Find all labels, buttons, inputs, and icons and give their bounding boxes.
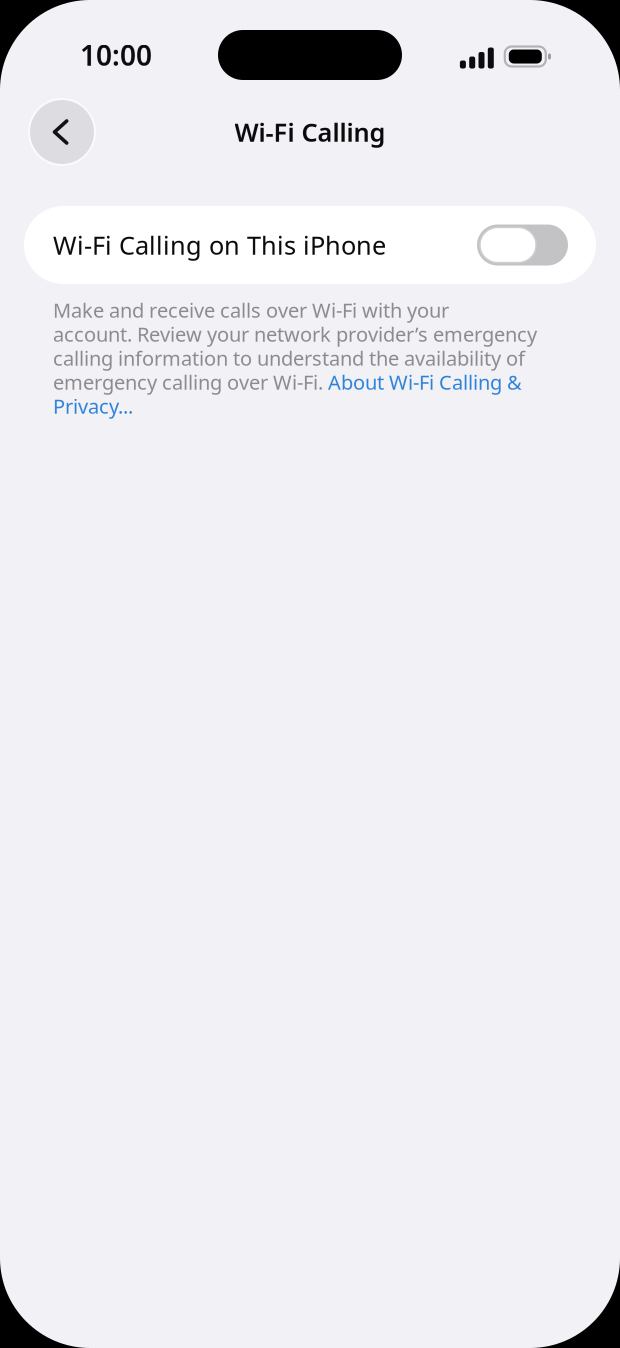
staticText: 10:00: [80, 36, 152, 74]
button[interactable]: Back: [28, 98, 96, 166]
button[interactable]: emergency calling over Wi-Fi. About Wi-F…: [53, 370, 580, 418]
staticText: Privacy...: [53, 392, 133, 420]
staticText: account. Review your network provider’s …: [53, 320, 537, 348]
staticText: Wi-Fi Calling: [234, 115, 385, 149]
staticText: calling information to understand the av…: [53, 344, 525, 372]
staticText: Make and receive calls over Wi-Fi with y…: [53, 296, 449, 324]
staticText: emergency calling over Wi-Fi. About Wi-F…: [53, 368, 522, 396]
button[interactable]: Wi-Fi Calling on This iPhone: [24, 206, 596, 284]
staticText: Wi-Fi Calling on This iPhone: [53, 228, 386, 262]
